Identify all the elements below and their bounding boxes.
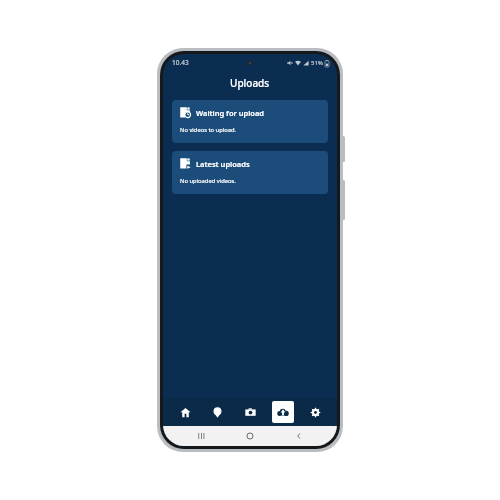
staticText: 51% xyxy=(311,59,323,67)
button[interactable]: Recents xyxy=(192,426,212,446)
button[interactable]: Back xyxy=(289,426,309,446)
button[interactable]: Settings xyxy=(304,401,326,423)
button[interactable]: Uploads xyxy=(272,401,294,423)
button[interactable]: Places xyxy=(206,401,228,423)
staticText: No uploaded videos. xyxy=(180,177,236,185)
button[interactable]: Home xyxy=(174,401,196,423)
button[interactable]: Camera xyxy=(239,401,261,423)
staticText: 10.43 xyxy=(172,58,189,67)
staticText: No videos to upload. xyxy=(180,126,237,134)
staticText: Latest uploads xyxy=(196,159,250,169)
button[interactable]: Latest uploads xyxy=(172,151,328,194)
staticText: Uploads xyxy=(230,76,270,90)
button[interactable]: Waiting for upload xyxy=(172,100,328,143)
staticText: Waiting for upload xyxy=(196,108,265,118)
button[interactable]: Home xyxy=(240,426,260,446)
